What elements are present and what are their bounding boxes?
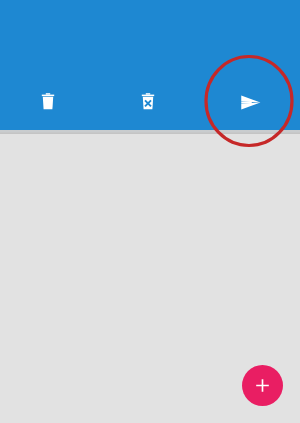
button[interactable]: Add: [242, 365, 283, 406]
button[interactable]: Delete forever: [128, 82, 168, 122]
button[interactable]: Send: [230, 82, 270, 122]
button[interactable]: Delete: [28, 82, 68, 122]
